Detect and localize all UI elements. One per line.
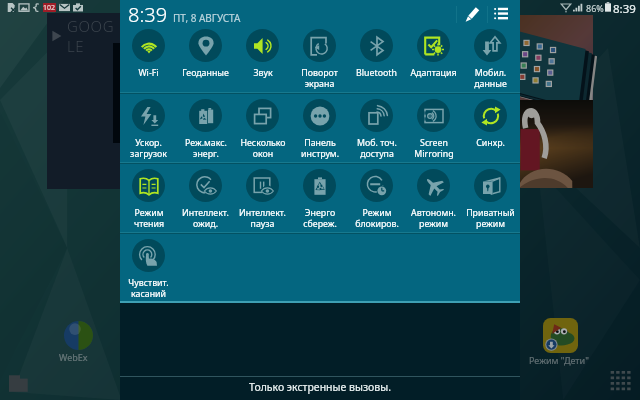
staticText: Реж.макс. энерг. — [185, 137, 227, 160]
button[interactable]: Энерго сбереж. — [291, 162, 348, 232]
button[interactable]: Ускор. загрузок — [120, 92, 177, 162]
staticText: 86% — [586, 2, 604, 14]
button[interactable]: Моб. точ. доступа — [348, 92, 405, 162]
staticText: Режим "Дети" — [529, 354, 589, 366]
button[interactable]: Синхр. — [462, 92, 519, 162]
staticText: Геоданные — [182, 67, 229, 79]
button[interactable]: Режим "Дети" — [543, 318, 603, 353]
staticText: Wi-Fi — [138, 67, 159, 79]
staticText: Синхр. — [476, 137, 505, 149]
staticText: Несколько окон — [240, 137, 286, 160]
button[interactable]: Интеллект. пауза — [234, 162, 291, 232]
button[interactable]: Edit — [457, 1, 487, 27]
button[interactable]: Реж.макс. энерг. — [177, 92, 234, 162]
staticText: Панель инструм. — [301, 137, 339, 160]
button[interactable]: Звук — [234, 22, 291, 92]
button[interactable]: Автономн. режим — [405, 162, 462, 232]
staticText: Интеллект. пауза — [239, 207, 286, 230]
staticText: Только экстренные вызовы. — [249, 380, 391, 394]
staticText: WebEx — [59, 351, 88, 363]
staticText: GOOGLE — [67, 16, 120, 56]
button[interactable]: Приватный режим — [462, 162, 519, 232]
staticText: 8:39 — [128, 1, 168, 28]
button[interactable]: WebEx — [64, 321, 93, 350]
staticText: Режим блокиров. — [355, 207, 399, 230]
button[interactable]: Wi-Fi — [120, 22, 177, 92]
button[interactable]: Screen Mirroring — [405, 92, 462, 162]
button[interactable]: List — [488, 1, 514, 27]
staticText: Интеллект. ожид. — [182, 207, 229, 230]
staticText: Моб. точ. доступа — [357, 137, 397, 160]
staticText: 8:39 — [613, 1, 636, 17]
button[interactable]: Bluetooth — [348, 22, 405, 92]
button[interactable]: Режим блокиров. — [348, 162, 405, 232]
staticText: ПТ, 8 АВГУСТА — [173, 11, 241, 25]
staticText: Режим чтения — [134, 207, 164, 230]
staticText: Звук — [253, 67, 273, 79]
button[interactable]: Геоданные — [177, 22, 234, 92]
button[interactable]: Несколько окон — [234, 92, 291, 162]
button[interactable]: Чувствит. касаний — [120, 232, 177, 302]
button[interactable]: Панель инструм. — [291, 92, 348, 162]
button[interactable]: Мобил. данные — [462, 22, 519, 92]
button[interactable]: Поворот экрана — [291, 22, 348, 92]
staticText: Поворот экрана — [301, 67, 338, 90]
staticText: Ускор. загрузок — [130, 137, 167, 160]
staticText: Энерго сбереж. — [303, 207, 337, 230]
staticText: Чувствит. касаний — [128, 277, 169, 300]
staticText: Автономн. режим — [411, 207, 456, 230]
staticText: Адаптация — [410, 67, 457, 79]
button[interactable]: Адаптация — [405, 22, 462, 92]
staticText: Мобил. данные — [474, 67, 507, 90]
button[interactable]: Режим чтения — [120, 162, 177, 232]
staticText: Screen Mirroring — [414, 137, 454, 160]
staticText: Bluetooth — [356, 67, 397, 79]
staticText: Приватный режим — [466, 207, 515, 230]
button[interactable]: Интеллект. ожид. — [177, 162, 234, 232]
staticText: 102 — [43, 3, 56, 12]
